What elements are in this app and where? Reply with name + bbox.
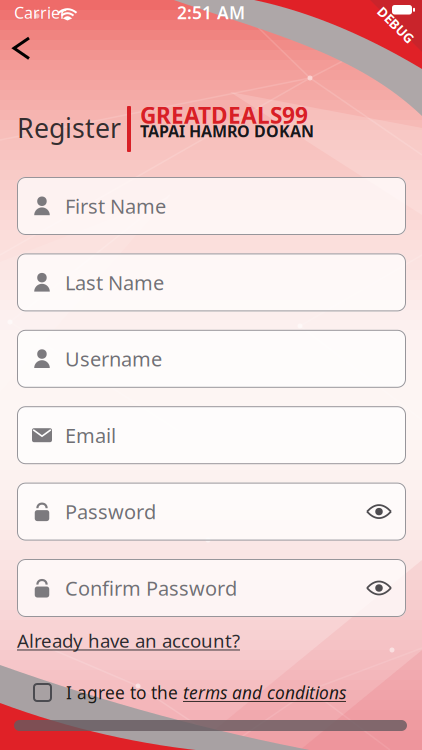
staticText: Last Name <box>65 269 164 296</box>
button[interactable]: I agree to the terms and conditions <box>33 683 52 702</box>
button[interactable]: Last Name <box>17 253 406 311</box>
button[interactable]: I agree to the terms and conditions <box>66 681 346 704</box>
staticText: Confirm Password <box>65 575 237 601</box>
staticText: TAPAI HAMRO DOKAN <box>140 120 314 142</box>
staticText: Already have an account? <box>17 628 240 653</box>
staticText: Register <box>17 110 121 145</box>
button[interactable]: Back <box>2 27 46 71</box>
staticText: 2:51 AM <box>177 1 245 24</box>
button[interactable]: First Name <box>17 177 406 235</box>
staticText: Email <box>65 422 116 448</box>
staticText: DEBUG <box>373 16 419 34</box>
staticText: Carrier <box>14 2 67 23</box>
staticText: I agree to the terms and conditions <box>66 681 346 704</box>
button[interactable]: Confirm Password <box>17 559 406 617</box>
staticText: GREATDEALS99 <box>140 100 308 130</box>
button[interactable]: Email <box>17 406 406 464</box>
staticText: Username <box>65 345 162 372</box>
staticText: First Name <box>65 193 166 219</box>
button[interactable]: Already have an account? <box>17 628 240 653</box>
button[interactable]: Username <box>17 330 406 388</box>
button[interactable]: Password <box>17 483 406 541</box>
staticText: Password <box>65 498 156 525</box>
